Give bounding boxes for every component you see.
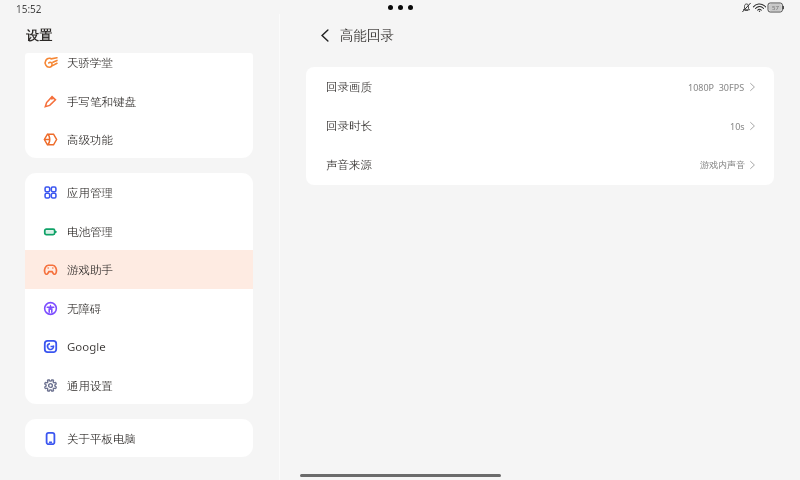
staticText: 通用设置: [67, 379, 113, 393]
button[interactable]: Google: [25, 327, 253, 366]
staticText: 高级功能: [67, 133, 113, 147]
staticText: 声音来源: [326, 158, 372, 172]
staticText: 无障碍: [67, 302, 102, 316]
staticText: 游戏助手: [67, 263, 113, 277]
staticText: 手写笔和键盘: [67, 95, 136, 109]
staticText: 15:52: [16, 2, 42, 16]
button[interactable]: 无障碍: [25, 289, 253, 328]
button[interactable]: 回录时长: [306, 106, 774, 145]
staticText: 高能回录: [340, 27, 394, 44]
button[interactable]: 游戏助手: [25, 250, 253, 289]
button[interactable]: 返回: [314, 24, 336, 46]
staticText: 电池管理: [67, 225, 113, 239]
staticText: 设置: [26, 27, 52, 43]
staticText: 游戏内声音: [700, 159, 745, 170]
button[interactable]: 通用设置: [25, 366, 253, 404]
staticText: 关于平板电脑: [67, 432, 136, 446]
staticText: 天骄学堂: [67, 56, 113, 70]
staticText: 10s: [730, 120, 745, 132]
staticText: Google: [67, 339, 106, 355]
button[interactable]: 回录画质: [306, 67, 774, 106]
staticText: 回录时长: [326, 119, 372, 133]
button[interactable]: 手写笔和键盘: [25, 82, 253, 121]
button[interactable]: 声音来源: [306, 145, 774, 184]
button[interactable]: 高级功能: [25, 120, 253, 158]
staticText: 57: [772, 4, 779, 12]
staticText: 1080P 30FPS: [688, 81, 745, 93]
staticText: 回录画质: [326, 80, 372, 94]
button[interactable]: 应用管理: [25, 173, 253, 212]
button[interactable]: 关于平板电脑: [25, 419, 253, 457]
button[interactable]: 电池管理: [25, 212, 253, 251]
staticText: 应用管理: [67, 186, 113, 200]
button[interactable]: 天骄学堂: [25, 53, 253, 82]
